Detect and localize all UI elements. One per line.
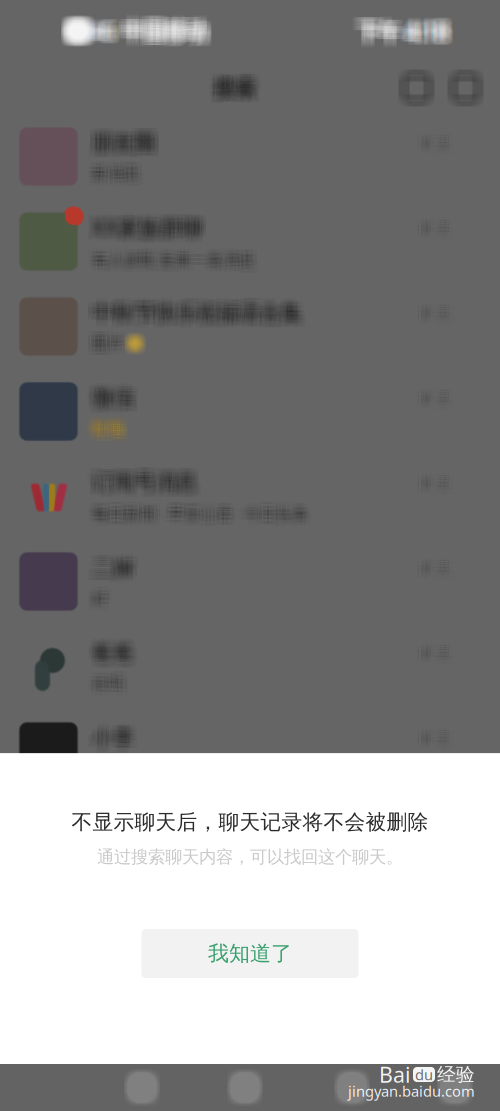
staticText: 新消息: [93, 158, 141, 178]
staticText: 昨天: [418, 387, 448, 406]
staticText: 昨天: [425, 556, 455, 575]
staticText: 昨天: [425, 220, 455, 238]
staticText: 昨天: [422, 220, 452, 238]
staticText: 好: [88, 594, 104, 614]
staticText: 新消息: [91, 161, 139, 181]
staticText: 好: [96, 588, 112, 609]
staticText: 小李: [91, 727, 133, 754]
staticText: 二婶: [96, 556, 138, 583]
staticText: 搜索: [217, 72, 259, 99]
staticText: XX家族群聊: [93, 218, 203, 247]
staticText: 爸爸: [88, 634, 130, 661]
staticText: 昨天: [416, 225, 446, 244]
staticText: 昨天: [417, 725, 447, 743]
staticText: 昨天: [424, 130, 454, 148]
staticText: 昨天: [425, 734, 455, 752]
staticText: 新消息: [92, 162, 140, 182]
staticText: 红包: [92, 418, 124, 439]
staticText: 昨天: [416, 223, 446, 241]
staticText: 昨天: [416, 471, 446, 490]
staticText: 每日新闻 · 早安心语 · 今日头条: [87, 502, 303, 524]
staticText: 爸爸: [89, 634, 131, 661]
staticText: 二婶: [97, 560, 139, 587]
staticText: 昨天: [425, 564, 455, 582]
staticText: 下午 4:18: [355, 15, 445, 44]
staticText: 昨天: [416, 648, 446, 666]
staticText: XX家族群聊: [93, 214, 203, 243]
staticText: 昨天: [422, 731, 452, 750]
staticText: 每日新闻 · 早安心语 · 今日头条: [96, 497, 312, 519]
staticText: 红包: [92, 414, 124, 435]
staticText: 新消息: [91, 159, 139, 180]
staticText: 二婶: [91, 552, 133, 579]
staticText: 昨天: [425, 561, 455, 580]
staticText: 下午 4:18: [357, 22, 447, 51]
staticText: 在吗: [92, 671, 124, 691]
staticText: 中国移动: [129, 20, 213, 47]
staticText: 收到，明天见 今天的照片发给你: [97, 753, 326, 773]
staticText: 图片: [97, 331, 129, 351]
staticText: 在吗: [92, 675, 124, 695]
button[interactable]: 我知道了: [141, 929, 358, 978]
staticText: 每日新闻 · 早安心语 · 今日头条: [88, 502, 304, 524]
staticText: 中秋节快乐祝福语合集: [96, 297, 306, 324]
staticText: 朋友圈: [91, 127, 154, 154]
staticText: 昨天: [424, 476, 454, 495]
staticText: 昨天: [421, 649, 451, 667]
staticText: XX家族群聊: [88, 218, 198, 247]
staticText: 中秋节快乐祝福语合集: [87, 305, 297, 332]
staticText: 订阅号消息: [87, 467, 192, 494]
staticText: 每日新闻 · 早安心语 · 今日头条: [89, 506, 305, 528]
staticText: 昨天: [422, 734, 452, 752]
staticText: 二婶: [88, 552, 130, 579]
staticText: 红包: [97, 417, 129, 437]
staticText: 昨天: [426, 564, 456, 582]
staticText: 好: [92, 584, 108, 605]
staticText: 好: [96, 587, 112, 607]
staticText: 昨天: [420, 476, 450, 495]
staticText: 中国移动: [127, 12, 211, 39]
staticText: 爸爸: [87, 639, 129, 666]
staticText: 每日新闻 · 早安心语 · 今日头条: [96, 504, 312, 526]
staticText: 昨天: [420, 649, 450, 667]
staticText: 昨天: [416, 472, 446, 491]
staticText: XX家族群聊: [93, 216, 203, 245]
staticText: 4G: [89, 21, 112, 44]
staticText: 昨天: [420, 393, 450, 411]
staticText: 每日新闻 · 早安心语 · 今日头条: [91, 501, 307, 523]
staticText: 微信: [97, 381, 139, 407]
staticText: 中秋节快乐祝福语合集: [93, 297, 303, 324]
staticText: 小李: [87, 724, 129, 751]
staticText: 昨天: [420, 565, 450, 584]
staticText: 下午 4:18: [364, 21, 454, 50]
staticText: 好: [89, 591, 105, 611]
staticText: 图片: [92, 333, 124, 354]
staticText: 图片: [95, 337, 127, 357]
staticText: 每日新闻 · 早安心语 · 今日头条: [88, 497, 304, 519]
staticText: 昨天: [418, 479, 448, 497]
staticText: 朋友圈: [87, 133, 150, 160]
staticText: 昨天: [426, 130, 456, 148]
staticText: 昨天: [421, 646, 451, 665]
staticText: 好: [91, 584, 107, 605]
staticText: 微信: [88, 384, 130, 411]
staticText: 下午 4:18: [361, 18, 451, 47]
staticText: 昨天: [418, 220, 448, 238]
staticText: 有人@我 发来一条消息: [87, 251, 250, 273]
staticText: 昨天: [416, 391, 446, 410]
staticText: 昨天: [416, 729, 446, 747]
staticText: 昨天: [422, 393, 452, 411]
staticText: 下午 4:18: [358, 22, 448, 51]
staticText: 昨天: [418, 389, 448, 407]
staticText: 爸爸: [96, 639, 138, 666]
staticText: 中秋节快乐祝福语合集: [95, 299, 305, 326]
staticText: 微信: [87, 381, 129, 407]
staticText: 搜索: [213, 76, 255, 103]
staticText: 昨天: [422, 138, 452, 156]
staticText: 在吗: [96, 679, 128, 699]
staticText: 昨天: [425, 565, 455, 584]
staticText: 二婶: [96, 560, 138, 587]
staticText: 红包: [89, 417, 121, 437]
